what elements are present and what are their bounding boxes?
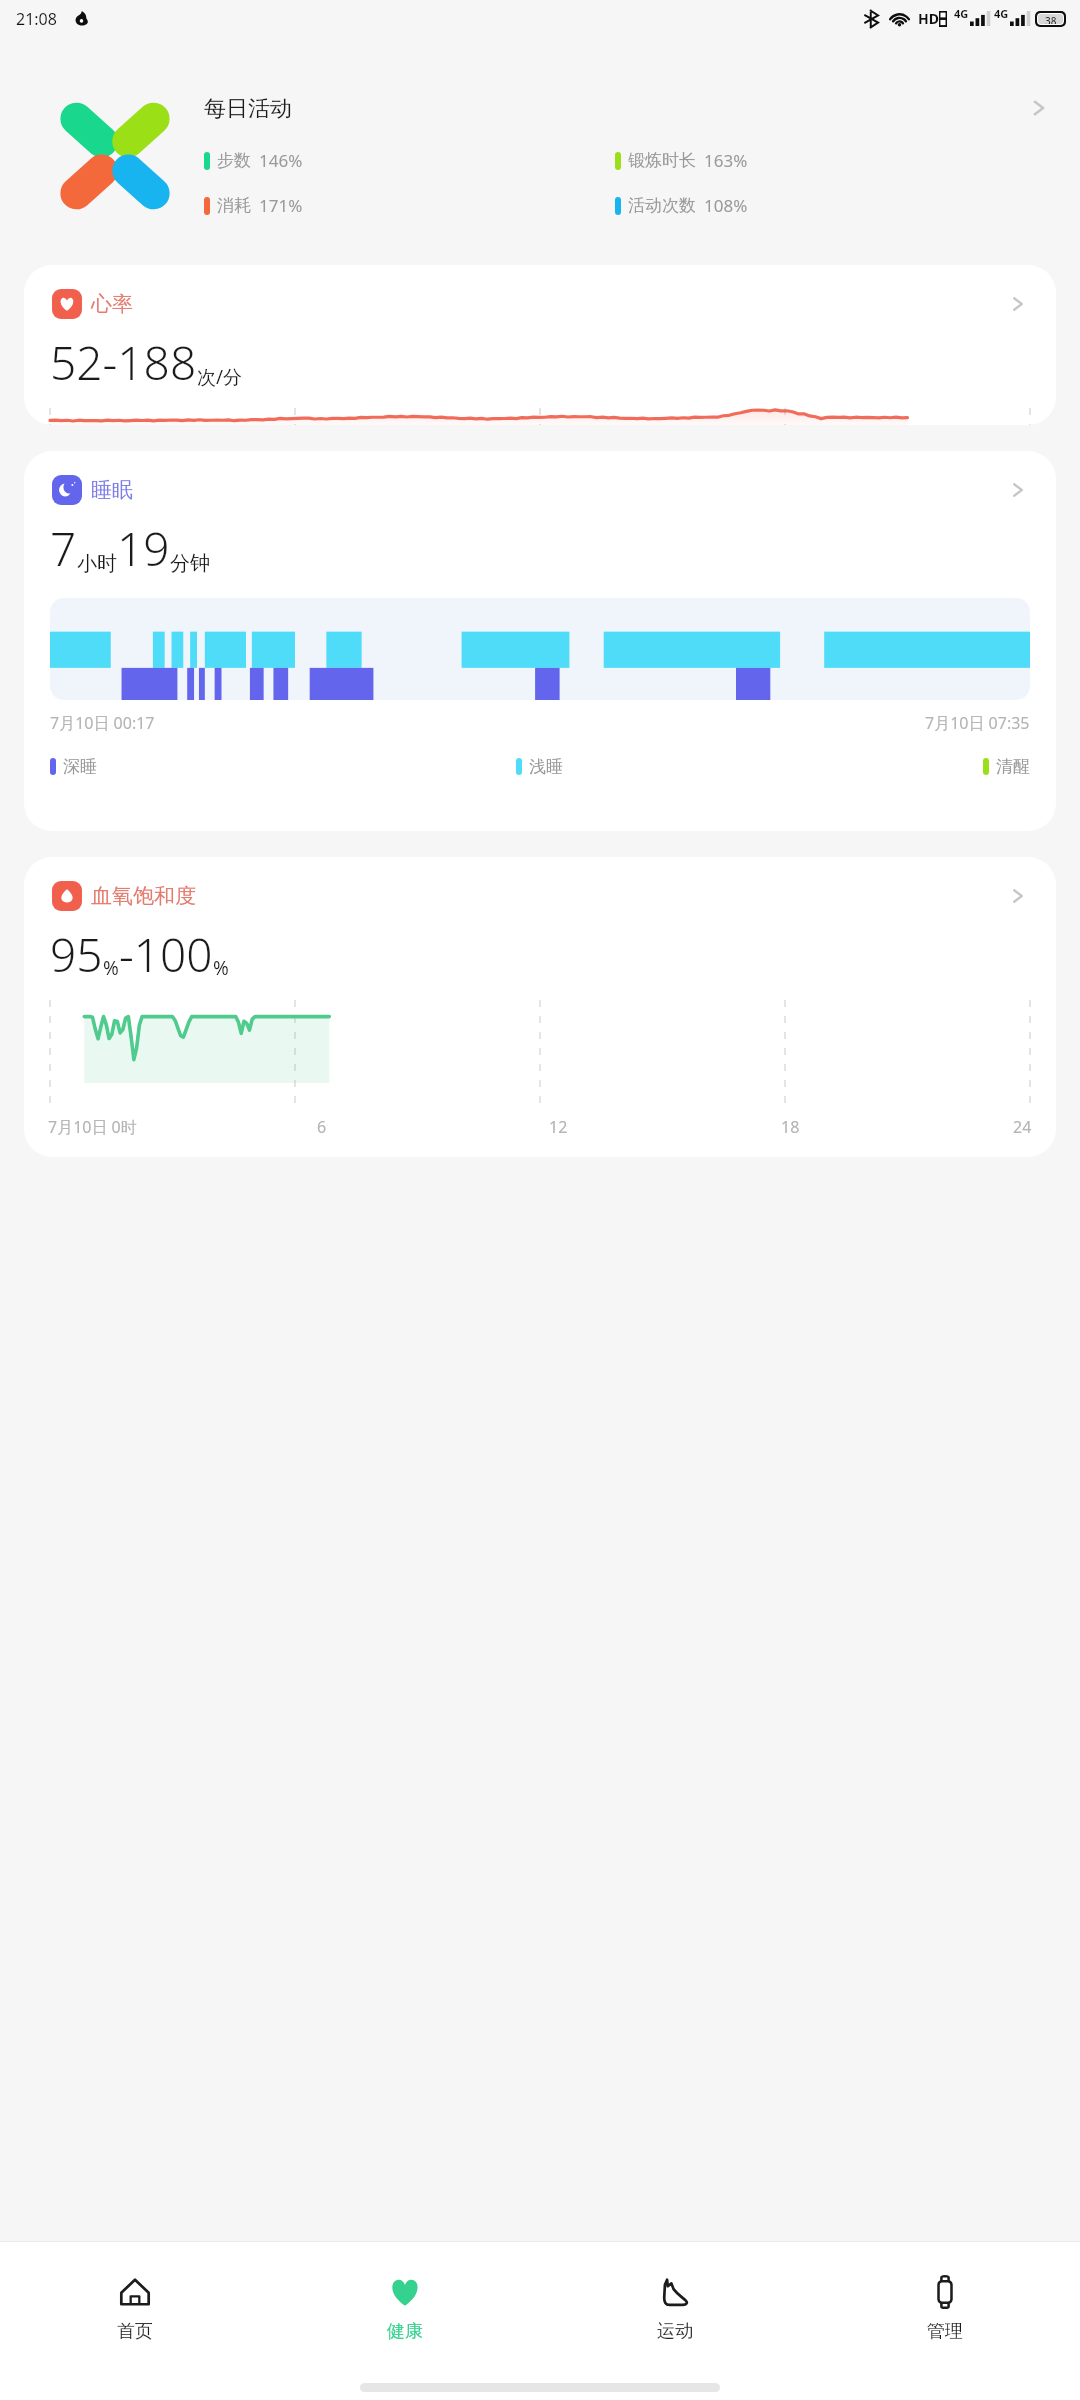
staticText: 睡眠	[91, 477, 133, 503]
staticText: 心率	[91, 291, 133, 317]
button[interactable]: 首页	[0, 2264, 270, 2353]
staticText: -100	[119, 923, 213, 986]
staticText: 108%	[704, 194, 748, 217]
staticText: 7月10日 0时	[48, 1116, 137, 1138]
button[interactable]: 血氧饱和度	[24, 857, 1056, 1157]
staticText: 6	[317, 1116, 327, 1138]
staticText: %	[213, 955, 229, 981]
staticText: 163%	[704, 149, 748, 172]
staticText: 7	[50, 517, 77, 580]
button[interactable]: 管理	[810, 2264, 1080, 2353]
staticText: 12	[549, 1116, 568, 1138]
button[interactable]: 睡眠	[24, 451, 1056, 831]
staticText: 运动	[657, 2320, 693, 2343]
staticText: 每日活动	[204, 95, 292, 123]
staticText: 浅睡	[529, 756, 563, 777]
staticText: 4G	[994, 6, 1009, 21]
staticText: 步数	[217, 150, 251, 171]
staticText: 19	[117, 517, 170, 580]
staticText: 健康	[387, 2320, 423, 2343]
staticText: 深睡	[63, 756, 97, 777]
button[interactable]: 心率	[24, 265, 1056, 425]
staticText: 21:08	[16, 8, 57, 30]
staticText: 146%	[259, 149, 303, 172]
staticText: 血氧饱和度	[91, 883, 196, 909]
staticText: HD	[918, 9, 939, 28]
staticText: 首页	[117, 2320, 153, 2343]
staticText: 171%	[259, 194, 303, 217]
staticText: 95	[50, 923, 103, 986]
staticText: 次/分	[197, 364, 243, 390]
staticText: 7月10日 07:35	[925, 712, 1030, 734]
button[interactable]: 健康	[270, 2264, 540, 2353]
staticText: 52-188	[50, 331, 197, 394]
staticText: 38	[1045, 14, 1057, 24]
staticText: 4G	[954, 6, 969, 21]
staticText: 活动次数	[628, 195, 696, 216]
staticText: 清醒	[996, 756, 1030, 777]
staticText: 消耗	[217, 195, 251, 216]
staticText: 24	[1013, 1116, 1032, 1138]
staticText: 小时	[77, 551, 117, 576]
staticText: 7月10日 00:17	[50, 712, 155, 734]
button[interactable]: 运动	[540, 2264, 810, 2353]
button[interactable]: 每日活动	[0, 81, 1080, 231]
staticText: 管理	[927, 2320, 963, 2343]
staticText: 锻炼时长	[628, 150, 696, 171]
staticText: 18	[781, 1116, 800, 1138]
staticText: %	[103, 955, 119, 981]
staticText: 分钟	[170, 551, 210, 576]
